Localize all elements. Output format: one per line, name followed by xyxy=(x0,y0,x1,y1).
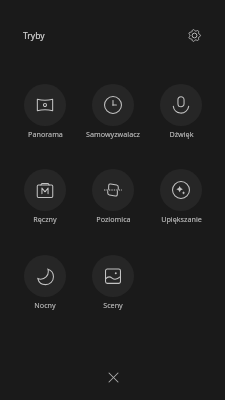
button[interactable] xyxy=(24,84,66,126)
button[interactable]: Close xyxy=(95,359,131,395)
staticText: Ręczny xyxy=(33,214,57,224)
staticText: Dźwięk xyxy=(169,129,194,139)
button[interactable] xyxy=(24,255,66,297)
staticText: Sceny xyxy=(103,300,123,310)
button[interactable] xyxy=(160,169,202,211)
button[interactable] xyxy=(160,84,202,126)
staticText: Poziomica xyxy=(96,214,131,224)
button[interactable]: Settings xyxy=(182,23,207,48)
staticText: Samowyzwalacz xyxy=(86,129,140,139)
button[interactable] xyxy=(24,169,66,211)
button[interactable] xyxy=(92,169,134,211)
staticText: Nocny xyxy=(34,300,56,310)
staticText: Tryby xyxy=(23,30,45,42)
button[interactable] xyxy=(92,84,134,126)
button[interactable] xyxy=(92,255,134,297)
staticText: Upiększanie xyxy=(161,214,202,224)
staticText: Panorama xyxy=(28,129,63,139)
